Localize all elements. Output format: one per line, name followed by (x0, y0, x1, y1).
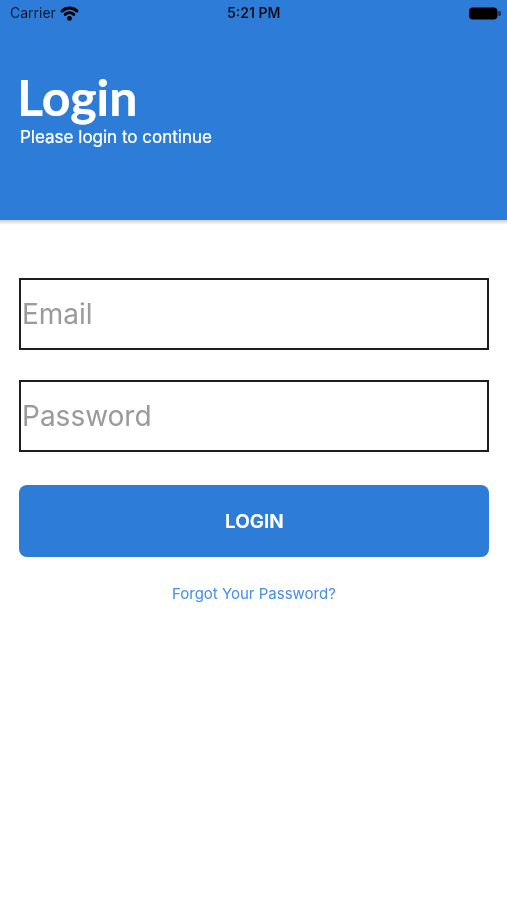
staticText: Login (17, 67, 138, 127)
staticText: Email (22, 297, 93, 331)
staticText: Please login to continue (20, 127, 212, 148)
staticText: Carrier (10, 4, 56, 21)
button[interactable]: Password (19, 380, 489, 452)
staticText: Forgot Your Password? (172, 584, 336, 602)
button[interactable]: LOGIN (19, 485, 489, 557)
button[interactable]: Email (19, 278, 489, 350)
staticText: Password (22, 399, 152, 433)
button[interactable]: Forgot Your Password? (166, 578, 342, 608)
staticText: LOGIN (225, 510, 284, 533)
staticText: 5:21 PM (227, 4, 281, 21)
